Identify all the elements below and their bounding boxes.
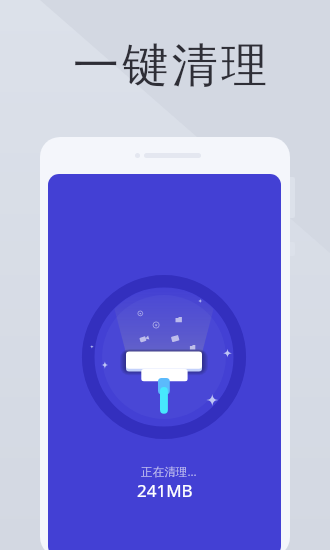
staticText: 正在清理... xyxy=(141,464,197,480)
staticText: 一键清理 xyxy=(73,37,271,95)
staticText: 241MB xyxy=(137,479,193,502)
